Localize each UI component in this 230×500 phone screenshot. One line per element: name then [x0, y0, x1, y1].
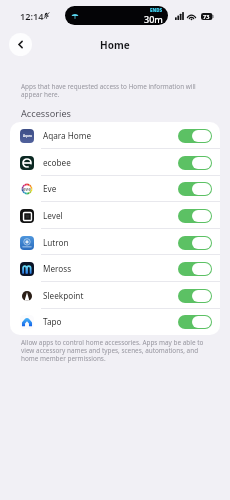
staticText: Eve: [43, 183, 57, 194]
staticText: Meross: [43, 263, 72, 274]
button[interactable]: Toggle: [178, 315, 212, 329]
button[interactable]: Aqara: [10, 122, 220, 149]
button[interactable]: eve: [10, 175, 220, 202]
button[interactable]: Tapo: [10, 308, 220, 335]
button[interactable]: Toggle: [178, 129, 212, 143]
button[interactable]: Toggle: [178, 209, 212, 223]
staticText: Allow apps to control home accessories. …: [21, 338, 204, 363]
staticText: Aqara Home: [43, 130, 92, 141]
staticText: Accessories: [21, 107, 71, 120]
staticText: ENDS: [150, 7, 163, 13]
staticText: 30m: [144, 13, 163, 25]
staticText: 12:14: [20, 10, 44, 23]
button[interactable]: Toggle: [178, 236, 212, 250]
button[interactable]: Back: [9, 33, 32, 56]
button[interactable]: ecobee: [10, 149, 220, 176]
button[interactable]: Meross: [10, 255, 220, 282]
staticText: Home: [100, 38, 130, 52]
staticText: Lutron: [43, 237, 69, 248]
staticText: Sleekpoint: [43, 290, 84, 301]
staticText: Tapo: [43, 316, 62, 327]
staticText: Apps that have requested access to Home …: [21, 82, 196, 99]
staticText: Aqara: [23, 134, 32, 138]
button[interactable]: Toggle: [178, 156, 212, 170]
button[interactable]: Toggle: [178, 182, 212, 196]
staticText: Level: [43, 210, 63, 221]
button[interactable]: Toggle: [178, 262, 212, 276]
staticText: ecobee: [43, 157, 71, 168]
staticText: eve: [23, 186, 31, 192]
staticText: 73: [203, 13, 210, 20]
button[interactable]: Lutron: [10, 229, 220, 256]
button[interactable]: Toggle: [178, 289, 212, 303]
button[interactable]: Sleekpoint: [10, 282, 220, 309]
button[interactable]: Level: [10, 202, 220, 229]
